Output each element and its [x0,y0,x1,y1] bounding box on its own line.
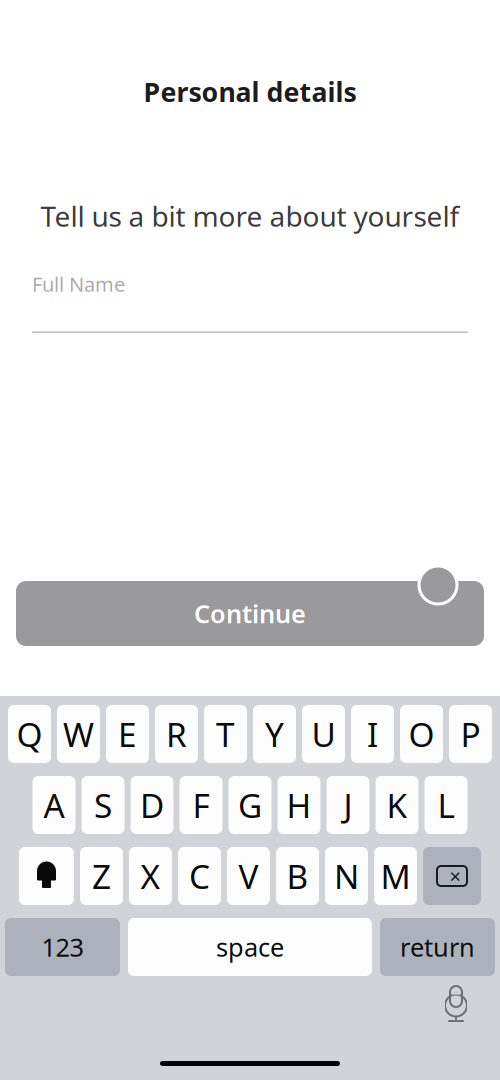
staticText: M [380,854,410,898]
staticText: Personal details [143,74,356,109]
staticText: Continue [194,597,306,630]
staticText: V [238,854,258,898]
button[interactable]: F [179,776,222,834]
staticText: L [437,783,454,827]
button[interactable]: K [375,776,418,834]
button[interactable]: Shift [19,847,74,905]
button[interactable]: X [129,847,172,905]
button[interactable]: A [32,776,75,834]
staticText: Tell us a bit more about yourself [40,197,459,235]
staticText: return [400,930,475,964]
staticText: U [311,712,335,756]
button[interactable]: R [155,705,198,763]
button[interactable]: O [400,705,443,763]
button[interactable]: T [204,705,247,763]
staticText: Q [16,712,42,756]
button[interactable]: G [228,776,271,834]
button[interactable]: E [106,705,149,763]
button[interactable]: D [130,776,173,834]
staticText: I [367,712,378,756]
button[interactable]: 123 [5,918,120,976]
staticText: E [118,712,137,756]
staticText: R [166,712,187,756]
button[interactable]: I [351,705,394,763]
button[interactable]: N [325,847,368,905]
button[interactable]: V [227,847,270,905]
button[interactable]: H [277,776,320,834]
staticText: Z [92,854,111,898]
button[interactable]: J [326,776,369,834]
staticText: K [386,783,407,827]
button[interactable]: B [276,847,319,905]
button[interactable]: Delete [423,847,481,905]
button[interactable]: L [424,776,467,834]
button[interactable]: U [302,705,345,763]
button[interactable]: return [380,918,495,976]
staticText: T [216,712,235,756]
button[interactable]: M [374,847,417,905]
staticText: H [286,783,311,827]
staticText: G [238,783,262,827]
staticText: space [216,930,284,964]
button[interactable]: Dictation [434,982,478,1026]
button[interactable]: Y [253,705,296,763]
staticText: 123 [41,930,83,964]
staticText: F [192,783,209,827]
button[interactable]: W [57,705,100,763]
staticText: J [343,783,352,827]
button[interactable]: P [449,705,492,763]
staticText: D [140,783,164,827]
button[interactable]: Z [80,847,123,905]
staticText: W [63,712,94,756]
button[interactable]: space [128,918,372,976]
staticText: P [460,712,480,756]
staticText: S [94,783,112,827]
staticText: B [286,854,308,898]
staticText: X [140,854,160,898]
staticText: × [449,863,460,889]
staticText: Y [265,712,284,756]
staticText: Full Name [32,271,125,297]
staticText: A [43,783,64,827]
button[interactable]: S [81,776,124,834]
staticText: O [408,712,434,756]
button[interactable]: Continue [16,581,484,646]
button[interactable]: C [178,847,221,905]
staticText: C [189,854,210,898]
button[interactable]: Q [8,705,51,763]
staticText: N [334,854,359,898]
